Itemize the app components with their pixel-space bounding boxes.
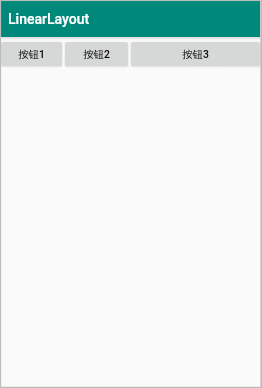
button[interactable]: 按钮2: [65, 42, 128, 66]
staticText: 按钮1: [18, 48, 45, 61]
staticText: 按钮2: [83, 48, 110, 61]
staticText: LinearLayout: [8, 11, 90, 27]
button[interactable]: 按钮1: [1, 42, 62, 66]
button[interactable]: 按钮3: [131, 42, 260, 66]
staticText: 按钮3: [182, 48, 209, 61]
